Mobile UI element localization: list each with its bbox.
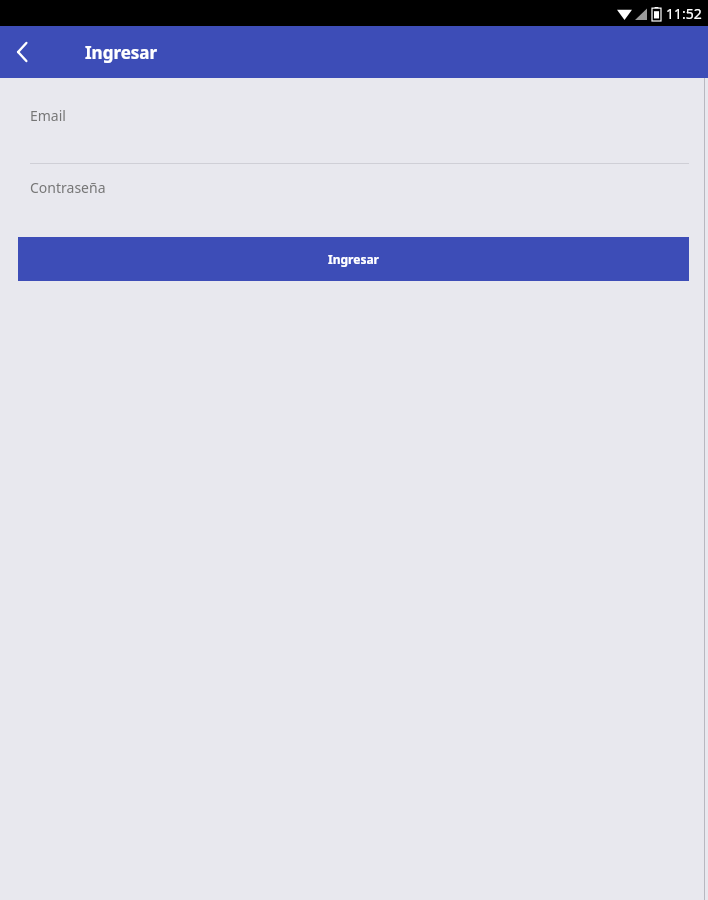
staticText: 11:52 (666, 4, 702, 23)
staticText: Ingresar (85, 41, 158, 64)
button[interactable]: Ingresar (18, 237, 689, 281)
staticText: Contraseña (30, 178, 106, 197)
staticText: Email (30, 106, 66, 125)
staticText: Ingresar (328, 251, 379, 267)
button[interactable]: Back (0, 30, 44, 74)
